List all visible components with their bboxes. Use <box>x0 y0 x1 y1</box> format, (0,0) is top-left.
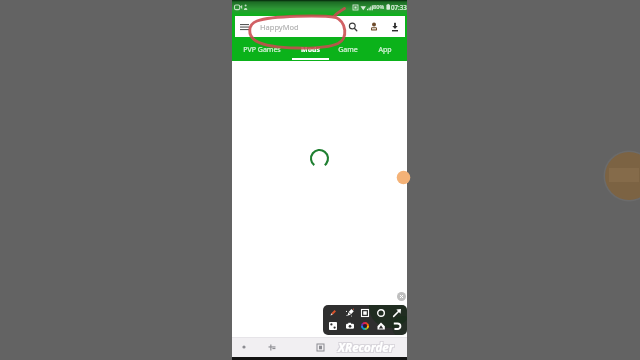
button[interactable]: Rectangle <box>358 307 371 319</box>
button[interactable]: Eraser <box>374 320 387 332</box>
button[interactable]: Close toolbar <box>397 292 406 301</box>
staticText: Game <box>338 45 358 55</box>
staticText: XRecorder <box>339 339 395 355</box>
button[interactable]: Game <box>332 37 363 61</box>
staticText: XRecorder <box>338 340 394 356</box>
button[interactable]: Colour <box>358 320 371 332</box>
button[interactable]: Mods <box>288 37 332 61</box>
button[interactable]: Marker <box>343 307 356 319</box>
staticText: XRecorder <box>337 341 393 357</box>
button[interactable]: Circle <box>374 307 387 319</box>
staticText: XRecorder <box>339 341 395 357</box>
button[interactable]: Screenshot <box>343 320 356 332</box>
button[interactable]: Undo <box>390 320 403 332</box>
button[interactable]: Search <box>342 16 363 37</box>
staticText: PVP Games <box>243 45 281 55</box>
button[interactable]: Home <box>266 341 278 353</box>
staticText: HappyMod <box>260 22 342 32</box>
staticText: 07:33 <box>391 3 407 11</box>
button[interactable]: Arrow <box>390 307 403 319</box>
staticText: App <box>378 45 392 55</box>
button[interactable]: Downloads <box>384 16 405 37</box>
button[interactable]: Recents <box>314 341 326 353</box>
staticText: XRecorder <box>337 339 393 355</box>
button[interactable]: Back <box>238 341 250 353</box>
staticText: 80% <box>373 3 385 11</box>
button[interactable]: PVP Games <box>237 37 286 61</box>
button[interactable]: Pen <box>326 307 339 319</box>
staticText: Mods <box>301 45 320 55</box>
button[interactable]: App <box>366 37 403 61</box>
button[interactable]: Account <box>363 16 384 37</box>
button[interactable]: Mosaic <box>326 320 339 332</box>
button[interactable]: Menu <box>235 16 254 37</box>
